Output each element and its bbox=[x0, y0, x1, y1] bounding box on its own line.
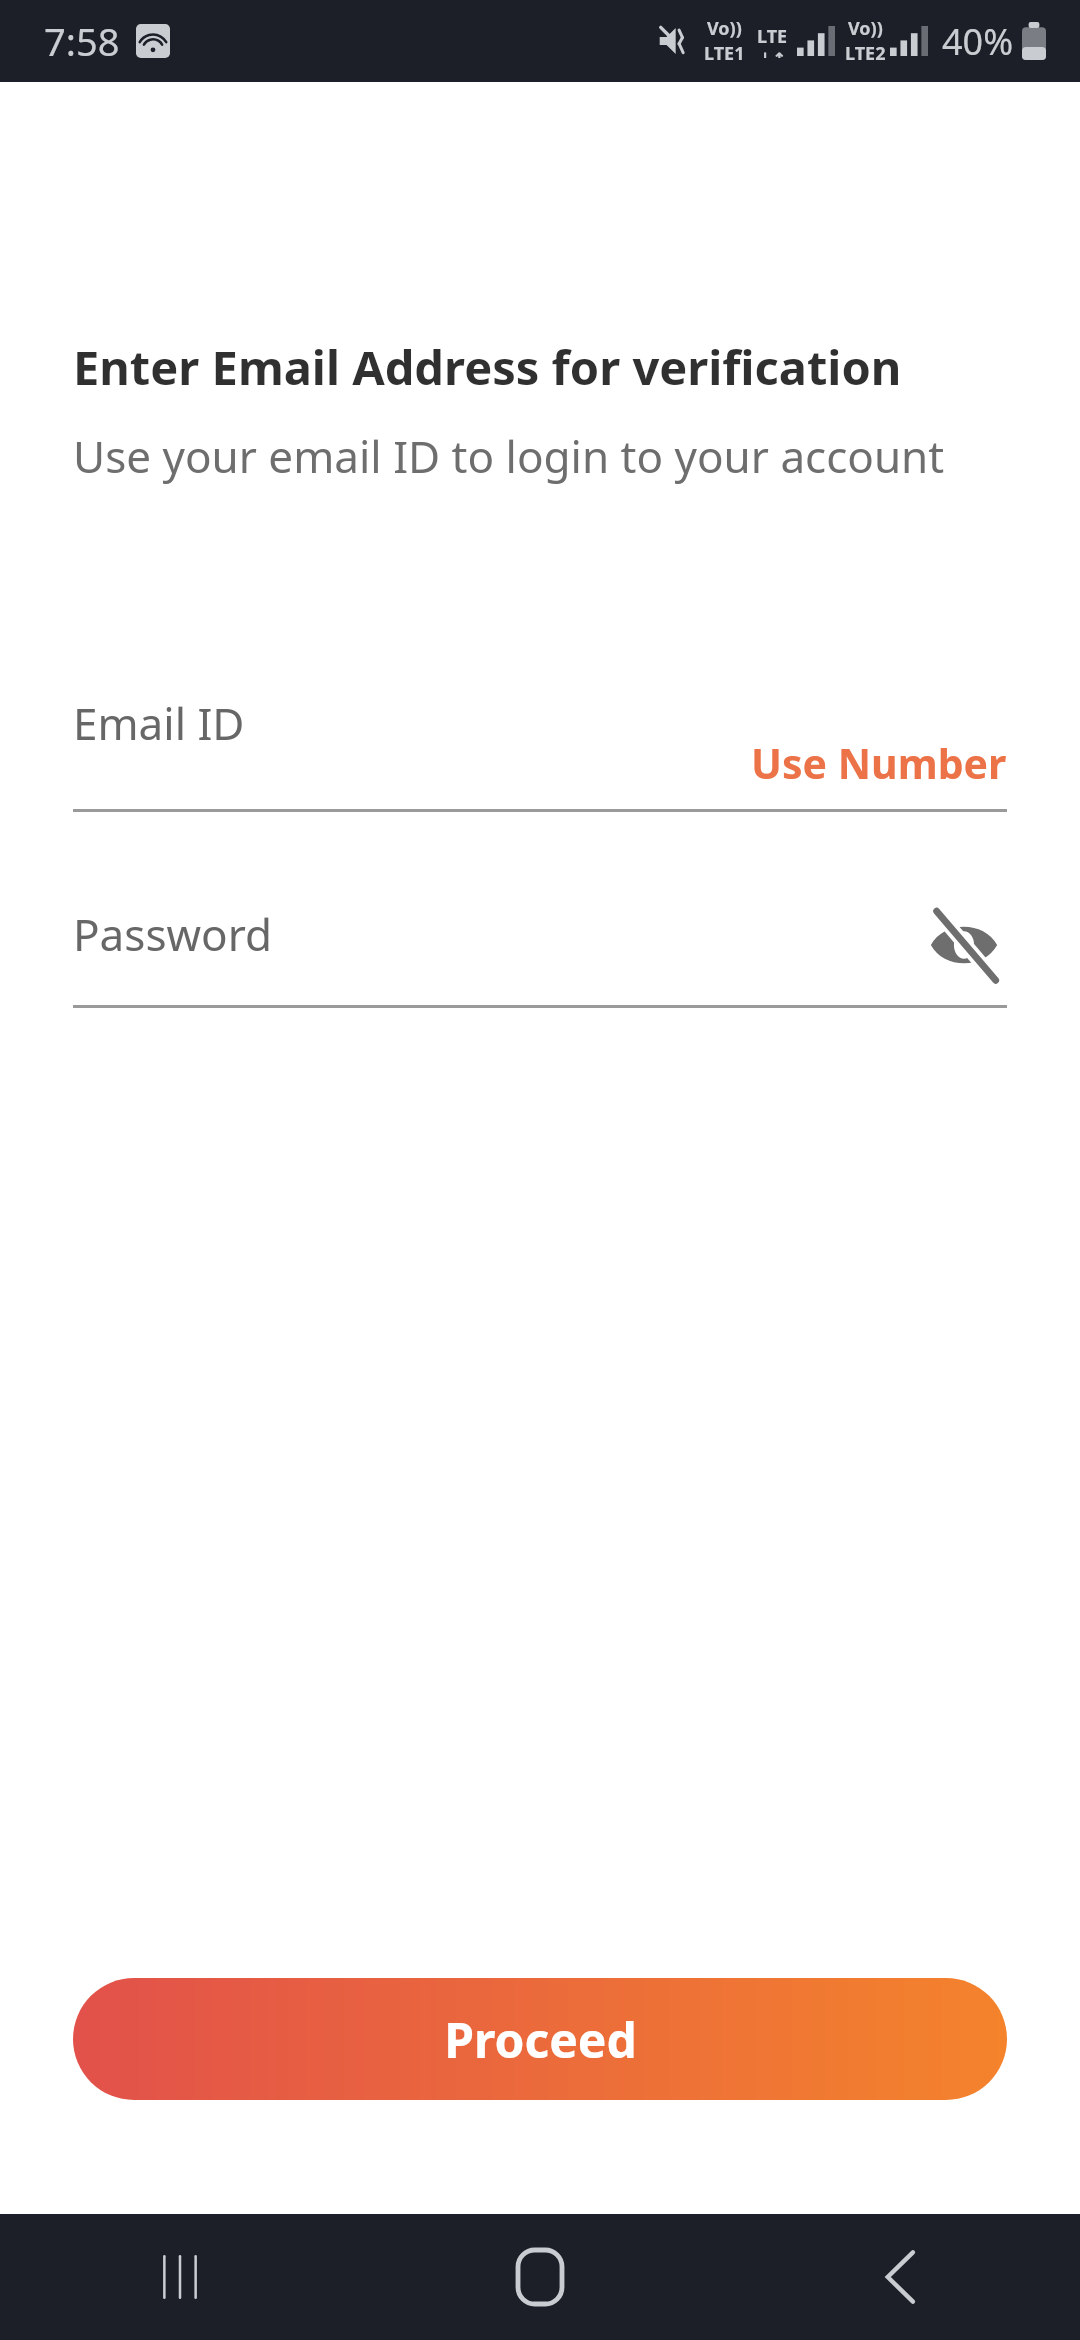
staticText: 7:58 bbox=[44, 15, 120, 67]
staticText: LTE bbox=[757, 24, 788, 49]
staticText: ↓↑ bbox=[758, 49, 787, 58]
staticText: Enter Email Address for verification bbox=[73, 335, 902, 399]
button[interactable]: Recent apps bbox=[0, 2214, 360, 2340]
staticText: Password bbox=[73, 904, 273, 964]
staticText: Use Number bbox=[751, 735, 1007, 791]
button[interactable]: Show password bbox=[921, 902, 1007, 988]
staticText: Vo)) bbox=[848, 16, 883, 41]
staticText: Email ID bbox=[73, 693, 245, 753]
button[interactable]: Password bbox=[73, 900, 1007, 1005]
staticText: LTE1 bbox=[704, 41, 745, 66]
staticText: Proceed bbox=[444, 2007, 637, 2072]
staticText: Use your email ID to login to your accou… bbox=[73, 426, 945, 486]
button[interactable]: Proceed bbox=[73, 1978, 1007, 2100]
staticText: LTE2 bbox=[845, 41, 886, 66]
staticText: 40% bbox=[942, 17, 1014, 66]
button[interactable]: Home bbox=[360, 2214, 720, 2340]
button[interactable]: Email ID bbox=[73, 689, 1007, 809]
staticText: Vo)) bbox=[707, 16, 742, 41]
button[interactable]: Back bbox=[720, 2214, 1080, 2340]
button[interactable]: Use Number bbox=[751, 735, 1007, 791]
